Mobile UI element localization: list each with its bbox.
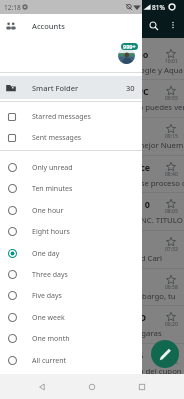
staticText: 07:32 (165, 246, 178, 253)
staticText: 10:01 (165, 58, 178, 65)
button[interactable]: Home (84, 379, 100, 395)
button[interactable]: One week (0, 307, 142, 328)
button[interactable]: Sent messages (0, 127, 142, 148)
button[interactable]: All current (0, 350, 142, 371)
button[interactable]: One day (0, 243, 142, 264)
staticText: 06:20 (165, 321, 178, 328)
staticText: Starred messages (32, 112, 91, 122)
button[interactable]: Las mejores novedades de HBO (0, 305, 184, 343)
staticText: One hour (32, 206, 64, 216)
staticText: 06:58 (165, 284, 178, 291)
button[interactable]: More options (165, 17, 180, 32)
staticText: Ahora debes continuar ya con todo ese pr… (6, 178, 184, 189)
staticText: 05:45 (165, 359, 178, 366)
staticText: Este mes tienes en HBO series SQ, llegar… (6, 328, 162, 339)
button[interactable]: Only unread (0, 157, 142, 178)
staticText: One day (32, 249, 60, 259)
staticText: 12:18 (4, 3, 21, 12)
button[interactable]: Accounts (0, 14, 142, 38)
button[interactable]: Compra las ofertas ahora! (0, 230, 184, 268)
button[interactable]: Account avatar (118, 47, 135, 64)
button[interactable]: Recibo de pago por valor 1.400 0 (0, 192, 184, 230)
staticText: Descuento muy especial del 65 (6, 349, 144, 361)
staticText: Ya tienes un nuevo capitulo d (6, 123, 138, 135)
button[interactable]: Recents (134, 379, 150, 395)
staticText: Ingresa ya mismo en la web el codigo del… (6, 366, 184, 377)
button[interactable]: Descuento muy especial del 65 (0, 343, 184, 381)
button[interactable]: Three days (0, 264, 142, 285)
staticText: Smart Folder (32, 83, 79, 93)
button[interactable]: Tu primera factura digital ya (0, 381, 184, 399)
button[interactable]: Ten minutes (0, 178, 142, 199)
staticText: 999+ (123, 43, 136, 50)
staticText: 08:40 (165, 171, 178, 178)
staticText: Only unread (32, 163, 73, 173)
staticText: Aqui tienes ya el contenido que sea mejo… (6, 140, 184, 151)
staticText: Conoce las ultimas novedades de Google y… (6, 65, 183, 76)
staticText: Hoy hace mucho calor, mira lo que no pue… (6, 102, 184, 113)
staticText: Ten minutes (32, 184, 73, 194)
button[interactable]: Tu pedido del nuevo libro ☷ (0, 268, 184, 306)
button[interactable]: Smart Folder (0, 76, 142, 99)
staticText: One week (32, 313, 65, 323)
button[interactable]: Back (34, 379, 50, 395)
staticText: Tu primera factura digital ya (6, 387, 134, 399)
staticText: All current (32, 356, 67, 366)
button[interactable]: One hour (0, 200, 142, 221)
staticText: Recibo de pago por valor 1.400 0 (6, 198, 150, 210)
staticText: Promociones especiales de la Navidad Car… (6, 253, 163, 264)
staticText: 09:55 (165, 95, 178, 102)
staticText: Sent messages (32, 133, 82, 143)
staticText: 08:05 (165, 208, 178, 215)
button[interactable]: Compose (151, 340, 179, 368)
staticText: Tu pedido del nuevo libro ☷ (6, 274, 130, 286)
staticText: RECIBO DE PAGO REALIZADO SIN CONC. TITUL… (6, 215, 183, 226)
button[interactable]: Search (145, 17, 162, 34)
button[interactable]: Ya tienes un nuevo capitulo d (0, 117, 184, 155)
staticText: Three days (32, 270, 68, 280)
button[interactable]: Starred messages (0, 106, 142, 127)
staticText: One month (32, 334, 70, 344)
staticText: Five days (32, 291, 62, 301)
button[interactable]: Eight hours (0, 221, 142, 242)
staticText: Las mejores novedades de HBO (6, 311, 147, 323)
staticText: Novedades de tu cuenta de Goo (6, 48, 149, 60)
staticText: 30 (126, 83, 135, 93)
staticText: Eight hours (32, 227, 70, 237)
staticText: Accounts (32, 21, 65, 31)
button[interactable]: El clima de hoy en tu zona. 24 °C (0, 79, 184, 117)
button[interactable]: Oferta especial del mes, el piece (0, 155, 184, 193)
staticText: Oferta especial del mes, el piece (6, 161, 151, 173)
staticText: El clima de hoy en tu zona. 24 °C (6, 85, 149, 97)
staticText: 81% (152, 3, 165, 12)
staticText: Gracias por tu compra de hoy, sin embarg… (6, 291, 176, 302)
button[interactable]: One month (0, 328, 142, 349)
button[interactable]: Novedades de tu cuenta de Goo (0, 42, 184, 80)
staticText: 09:15 (165, 133, 178, 140)
button[interactable]: Five days (0, 285, 142, 306)
